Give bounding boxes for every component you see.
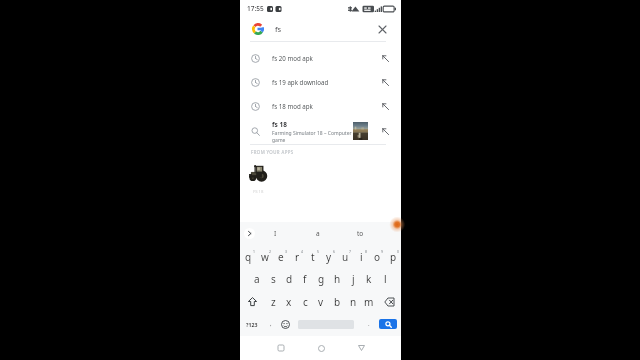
button[interactable]: z bbox=[265, 290, 281, 313]
staticText: m bbox=[364, 295, 374, 309]
button[interactable]: h bbox=[329, 268, 345, 290]
button[interactable]: 6 bbox=[321, 245, 337, 268]
button[interactable]: FS 18 bbox=[247, 164, 270, 195]
button[interactable]: 0 bbox=[385, 245, 401, 268]
button[interactable]: Shift bbox=[240, 290, 265, 313]
staticText: 5 bbox=[317, 249, 319, 254]
button[interactable]: v bbox=[313, 290, 329, 313]
staticText: a bbox=[316, 229, 320, 238]
button[interactable]: fs bbox=[240, 17, 401, 41]
staticText: . bbox=[368, 320, 370, 328]
staticText: fs 18 mod apk bbox=[272, 102, 313, 110]
staticText: b bbox=[334, 295, 341, 309]
button[interactable]: Insert query bbox=[377, 74, 393, 90]
staticText: fs 20 mod apk bbox=[272, 54, 313, 62]
staticText: t bbox=[311, 250, 315, 264]
button[interactable]: c bbox=[297, 290, 313, 313]
button[interactable]: m bbox=[361, 290, 377, 313]
staticText: 9 bbox=[381, 249, 383, 254]
staticText: e bbox=[278, 250, 284, 264]
staticText: x bbox=[286, 295, 292, 309]
staticText: Farming Simulator 18 – Computer game bbox=[272, 130, 352, 143]
button[interactable]: Recents bbox=[270, 337, 292, 359]
button[interactable]: I bbox=[255, 222, 296, 245]
button[interactable]: Emoji bbox=[278, 313, 292, 335]
button[interactable]: a bbox=[249, 268, 265, 290]
button[interactable]: x bbox=[281, 290, 297, 313]
staticText: h bbox=[334, 272, 341, 286]
button[interactable]: g bbox=[313, 268, 329, 290]
staticText: 3 bbox=[285, 249, 287, 254]
staticText: ?123 bbox=[246, 321, 258, 328]
button[interactable]: Home bbox=[310, 337, 332, 359]
staticText: r bbox=[295, 250, 300, 264]
button[interactable]: l bbox=[377, 268, 393, 290]
button[interactable]: , bbox=[264, 313, 278, 335]
staticText: I bbox=[274, 229, 277, 238]
staticText: s bbox=[271, 272, 276, 286]
button[interactable]: Back bbox=[350, 337, 372, 359]
staticText: o bbox=[374, 250, 381, 264]
button[interactable]: 4 bbox=[289, 245, 305, 268]
button[interactable]: k bbox=[361, 268, 377, 290]
button[interactable]: j bbox=[345, 268, 361, 290]
button[interactable]: Insert query bbox=[377, 98, 393, 114]
staticText: FS 18 bbox=[253, 189, 264, 195]
button[interactable]: n bbox=[345, 290, 361, 313]
button[interactable]: ?123 bbox=[240, 313, 264, 335]
button[interactable]: 2 bbox=[257, 245, 273, 268]
button[interactable]: a bbox=[296, 222, 340, 245]
staticText: n bbox=[350, 295, 357, 309]
staticText: c bbox=[303, 295, 308, 309]
button[interactable] bbox=[292, 313, 359, 335]
staticText: a bbox=[254, 272, 260, 286]
staticText: v bbox=[318, 295, 324, 309]
button[interactable]: fs 18 mod apk bbox=[240, 94, 401, 118]
staticText: fs 19 apk download bbox=[272, 78, 329, 86]
button[interactable]: 3 bbox=[273, 245, 289, 268]
button[interactable]: Insert query bbox=[377, 123, 393, 139]
button[interactable]: fs 20 mod apk bbox=[240, 46, 401, 70]
button[interactable]: f bbox=[297, 268, 313, 290]
staticText: , bbox=[270, 320, 272, 328]
staticText: 7 bbox=[349, 249, 351, 254]
staticText: 2 bbox=[269, 249, 271, 254]
staticText: fs 18 bbox=[272, 120, 287, 129]
staticText: l bbox=[384, 272, 387, 286]
staticText: FROM YOUR APPS bbox=[251, 149, 294, 155]
staticText: u bbox=[342, 250, 349, 264]
staticText: 8 bbox=[365, 249, 367, 254]
staticText: 4 bbox=[301, 249, 303, 254]
button[interactable]: More suggestions bbox=[244, 228, 255, 239]
staticText: g bbox=[318, 272, 325, 286]
staticText: f bbox=[303, 272, 307, 286]
staticText: 17:55 bbox=[247, 4, 264, 13]
button[interactable]: 5 bbox=[305, 245, 321, 268]
staticText: y bbox=[326, 250, 332, 264]
staticText: 6 bbox=[333, 249, 335, 254]
staticText: d bbox=[286, 272, 293, 286]
staticText: 1 bbox=[253, 249, 255, 254]
button[interactable]: s bbox=[265, 268, 281, 290]
button[interactable]: 8 bbox=[353, 245, 369, 268]
button[interactable]: 7 bbox=[337, 245, 353, 268]
staticText: to bbox=[357, 229, 364, 238]
button[interactable]: Backspace bbox=[377, 290, 401, 313]
button[interactable]: 9 bbox=[369, 245, 385, 268]
button[interactable]: Search bbox=[378, 313, 401, 335]
staticText: j bbox=[352, 272, 355, 286]
button[interactable]: 1 bbox=[240, 245, 257, 268]
button[interactable]: fs 18 bbox=[240, 118, 401, 144]
button[interactable]: fs 19 apk download bbox=[240, 70, 401, 94]
staticText: z bbox=[271, 295, 276, 309]
button[interactable]: d bbox=[281, 268, 297, 290]
button[interactable]: Insert query bbox=[377, 50, 393, 66]
button[interactable]: b bbox=[329, 290, 345, 313]
staticText: 0 bbox=[397, 249, 399, 254]
staticText: k bbox=[366, 272, 372, 286]
button[interactable]: Clear bbox=[373, 20, 391, 38]
staticText: i bbox=[360, 250, 363, 264]
staticText: p bbox=[390, 250, 397, 264]
button[interactable]: to bbox=[340, 222, 381, 245]
